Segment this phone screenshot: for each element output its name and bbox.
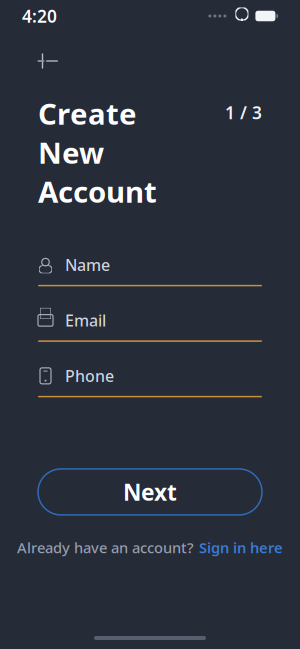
button[interactable]: Already have an account? [0,531,300,564]
button[interactable]: Back [26,44,66,78]
staticText: 4:20 [22,4,57,27]
staticText: Already have an account? [17,538,194,557]
staticText: Create New Account [38,94,157,211]
staticText: 1 / 3 [225,101,262,124]
staticText: Name [65,254,110,275]
staticText: Email [65,310,106,331]
staticText: Next [123,477,177,507]
staticText: Sign in here [199,538,283,557]
button[interactable]: Next [38,469,262,515]
staticText: Phone [65,365,114,386]
